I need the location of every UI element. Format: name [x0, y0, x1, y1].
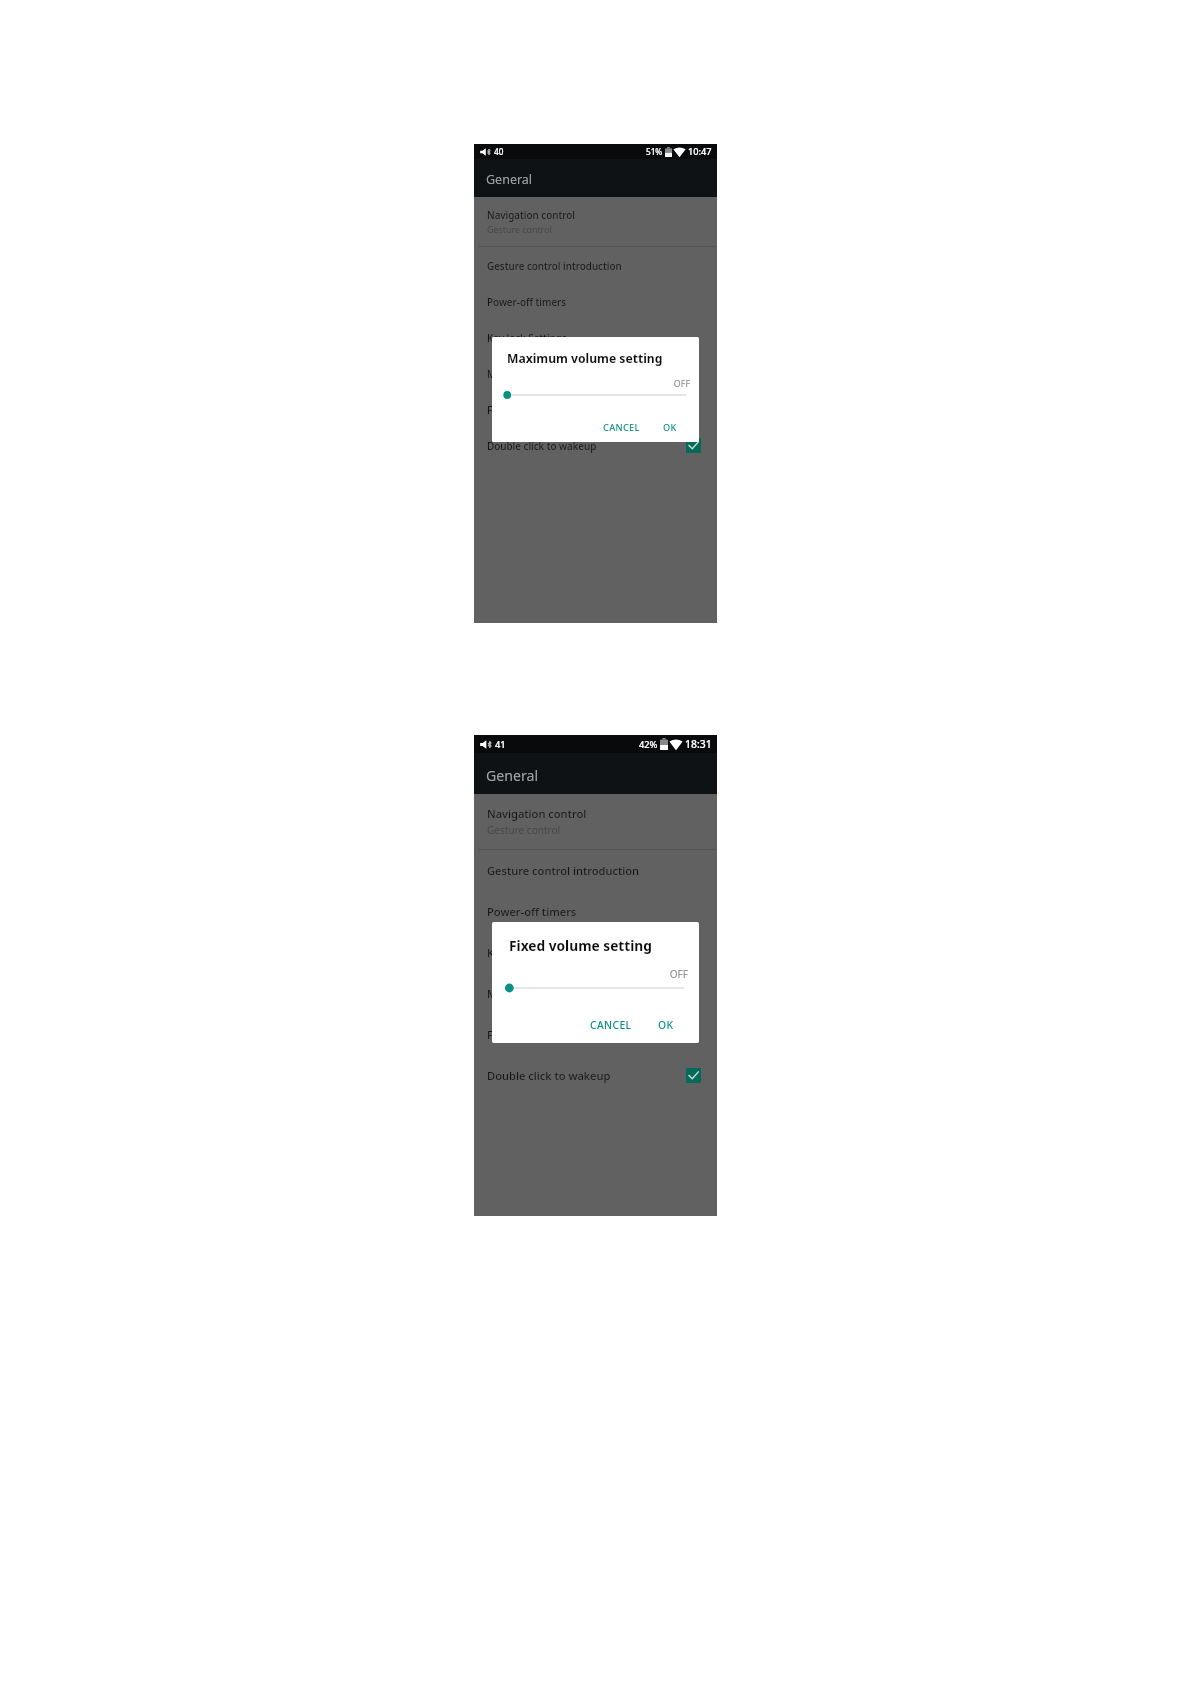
staticText: 10:47 — [688, 145, 712, 158]
button[interactable]: OK — [652, 1015, 680, 1035]
button[interactable]: Power-off timers — [474, 283, 717, 319]
staticText: General — [486, 171, 533, 188]
staticText: Navigation control — [487, 208, 575, 221]
button[interactable]: Double click to wakeup — [474, 427, 717, 463]
button[interactable]: Double click to wakeup, checked — [686, 438, 701, 453]
staticText: Fixed volume setting — [487, 403, 586, 416]
staticText: OFF — [492, 967, 688, 981]
staticText: 18:31 — [685, 737, 712, 751]
staticText: Power-off timers — [487, 904, 577, 919]
staticText: Gesture control — [487, 823, 561, 837]
button[interactable]: Gesture control introduction — [474, 850, 717, 891]
staticText: General — [486, 766, 539, 785]
staticText: OK — [658, 1018, 674, 1032]
button[interactable]: OK — [658, 418, 682, 436]
staticText: Double click to wakeup — [487, 1068, 611, 1083]
staticText: OFF — [492, 377, 690, 389]
button[interactable]: Maximum volume setting — [474, 973, 717, 1014]
button[interactable]: Key lock Settings — [474, 319, 717, 355]
button[interactable]: Double click to wakeup — [474, 1055, 717, 1096]
staticText: Gesture control introduction — [487, 863, 640, 878]
staticText: CANCEL — [590, 1018, 632, 1032]
button[interactable]: Double click to wakeup, checked — [686, 1068, 701, 1083]
button[interactable]: CANCEL — [598, 418, 645, 436]
staticText: Double click to wakeup — [487, 439, 597, 452]
button[interactable]: Navigation control — [474, 794, 717, 849]
staticText: Maximum volume setting — [487, 367, 609, 380]
staticText: Gesture control — [487, 223, 552, 235]
button[interactable]: Key lock Settings — [474, 932, 717, 973]
staticText: Key lock Settings — [487, 331, 567, 344]
staticText: CANCEL — [603, 421, 640, 433]
button[interactable]: General — [474, 159, 717, 197]
button[interactable]: General — [474, 753, 717, 794]
button[interactable]: Navigation control — [474, 197, 717, 246]
staticText: 41 — [495, 738, 506, 751]
staticText: Gesture control introduction — [487, 259, 622, 272]
staticText: 42% — [639, 738, 658, 751]
button[interactable]: CANCEL — [584, 1015, 638, 1035]
staticText: Fixed volume setting — [509, 936, 652, 955]
staticText: Maximum volume setting — [487, 986, 624, 1001]
button[interactable]: Maximum volume setting — [474, 355, 717, 391]
button[interactable]: Power-off timers — [474, 891, 717, 932]
staticText: Key lock Settings — [487, 945, 578, 960]
staticText: Fixed volume setting — [487, 1027, 598, 1042]
staticText: Power-off timers — [487, 295, 567, 308]
staticText: OK — [663, 421, 677, 433]
staticText: 40 — [494, 146, 504, 157]
button[interactable]: Fixed volume setting — [474, 1014, 717, 1055]
button[interactable]: Fixed volume setting — [474, 391, 717, 427]
button[interactable]: Gesture control introduction — [474, 247, 717, 283]
staticText: 51% — [646, 146, 663, 157]
staticText: Navigation control — [487, 806, 587, 821]
staticText: Maximum volume setting — [507, 350, 663, 367]
